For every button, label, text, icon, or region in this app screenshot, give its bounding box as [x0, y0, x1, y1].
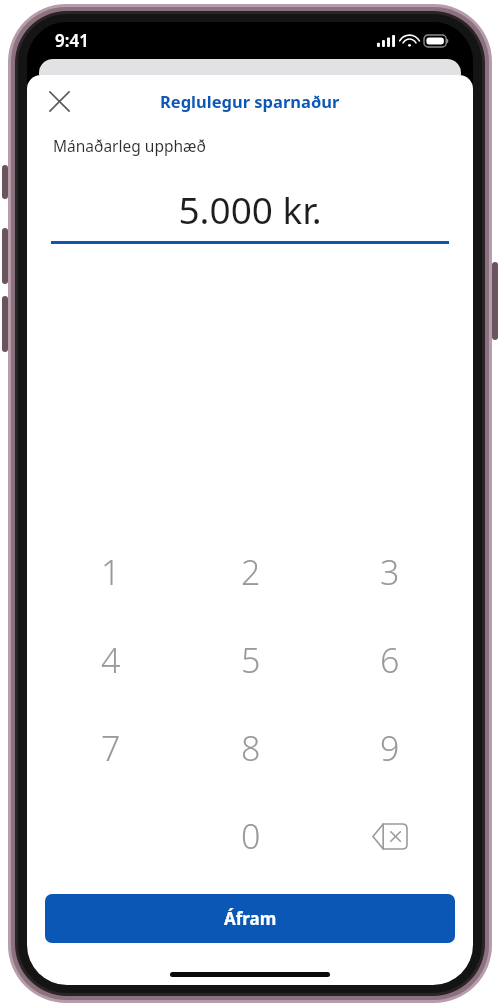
- button[interactable]: 4: [41, 616, 181, 704]
- button[interactable]: 7: [41, 704, 181, 792]
- button[interactable]: 2: [181, 528, 320, 616]
- button[interactable]: 5.000 kr.: [51, 184, 449, 244]
- staticText: 9:41: [55, 29, 89, 52]
- button[interactable]: 5: [181, 616, 320, 704]
- staticText: 7: [101, 725, 121, 771]
- staticText: 3: [380, 549, 400, 595]
- button[interactable]: 0: [181, 792, 320, 880]
- button[interactable]: Áfram: [45, 894, 455, 943]
- staticText: 6: [380, 637, 400, 683]
- button[interactable]: 3: [320, 528, 459, 616]
- button[interactable]: 9: [320, 704, 459, 792]
- staticText: Mánaðarleg upphæð: [53, 135, 206, 156]
- staticText: 5.000 kr.: [51, 184, 449, 234]
- button[interactable]: Loka: [39, 81, 79, 121]
- staticText: 1: [101, 549, 121, 595]
- staticText: 4: [101, 637, 121, 683]
- staticText: 0: [241, 813, 261, 859]
- staticText: 9: [380, 725, 400, 771]
- staticText: 8: [241, 725, 261, 771]
- button[interactable]: 8: [181, 704, 320, 792]
- staticText: 5: [241, 637, 261, 683]
- staticText: 2: [241, 549, 261, 595]
- staticText: Áfram: [224, 907, 277, 930]
- button[interactable]: 1: [41, 528, 181, 616]
- staticText: Reglulegur sparnaður: [160, 90, 340, 112]
- button[interactable]: Eyða: [320, 792, 459, 880]
- button[interactable]: 6: [320, 616, 459, 704]
